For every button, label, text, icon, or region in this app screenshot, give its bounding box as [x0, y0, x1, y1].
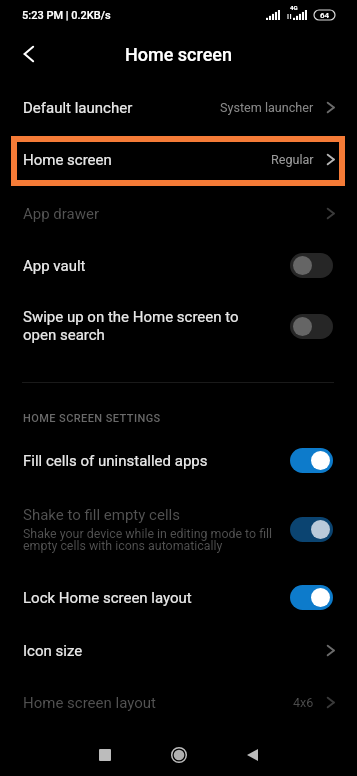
staticText: Home screen	[125, 44, 232, 65]
staticText: 4G	[290, 4, 298, 11]
staticText: Shake your device while in editing mode …	[23, 526, 273, 553]
button[interactable]: Icon size	[0, 624, 357, 677]
staticText: App vault	[23, 257, 86, 275]
staticText: Fill cells of uninstalled apps	[23, 452, 208, 470]
button[interactable]: Recent apps	[82, 731, 128, 776]
button[interactable]: Home screen	[0, 133, 357, 186]
staticText: HOME SCREEN SETTINGS	[23, 412, 161, 425]
staticText: 5:23 PM | 0.2KB/s	[22, 9, 111, 22]
button[interactable]: App drawer	[0, 187, 357, 240]
button[interactable]: Fill cells of uninstalled apps	[0, 434, 357, 487]
button[interactable]: Lock Home screen layout	[0, 571, 357, 624]
button[interactable]: Toggle	[290, 517, 333, 542]
staticText: Swipe up on the Home screen to open sear…	[23, 308, 239, 344]
staticText: Home screen	[23, 151, 112, 169]
staticText: Regular	[271, 152, 314, 167]
button[interactable]: Toggle	[290, 585, 333, 610]
button[interactable]: App vault	[0, 239, 357, 292]
button[interactable]: Back	[229, 731, 275, 776]
button[interactable]: Home	[156, 731, 202, 776]
button[interactable]: Toggle	[290, 314, 333, 339]
staticText: Lock Home screen layout	[23, 589, 192, 607]
staticText: App drawer	[23, 205, 100, 223]
button[interactable]: Home screen layout	[0, 676, 357, 729]
staticText: Icon size	[23, 642, 83, 660]
button[interactable]: Shake to fill empty cells	[0, 496, 357, 562]
staticText: Default launcher	[23, 99, 133, 117]
button[interactable]: Toggle	[290, 448, 333, 473]
staticText: Shake to fill empty cells	[23, 506, 180, 524]
button[interactable]: Swipe up on the Home screen to open sear…	[0, 295, 357, 357]
button[interactable]: Back	[13, 39, 43, 69]
button[interactable]: Toggle	[290, 253, 333, 278]
staticText: System launcher	[220, 100, 314, 115]
staticText: 64	[320, 11, 330, 20]
staticText: 4x6	[293, 695, 314, 710]
staticText: Home screen layout	[23, 694, 156, 712]
button[interactable]: Default launcher	[0, 81, 357, 134]
